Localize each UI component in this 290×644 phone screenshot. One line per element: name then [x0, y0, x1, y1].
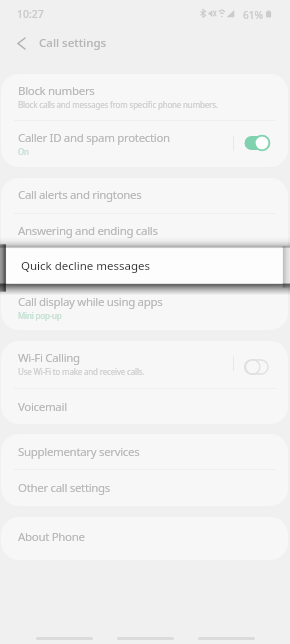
staticText: Block numbers [18, 83, 95, 99]
staticText: Quick decline messages [21, 258, 151, 274]
button[interactable]: About Phone [1, 517, 288, 560]
button[interactable]: Wi-Fi Calling [1, 341, 288, 388]
staticText: Call alerts and ringtones [18, 187, 142, 203]
button[interactable]: Voicemail [1, 389, 288, 424]
staticText: Supplementary services [18, 444, 140, 460]
button[interactable]: Other call settings [1, 470, 288, 505]
staticText: 61% [243, 8, 263, 22]
button[interactable]: Call display while using apps [1, 286, 288, 330]
staticText: About Phone [18, 529, 85, 545]
button[interactable]: Quick decline messages [6, 248, 282, 283]
button[interactable]: Block numbers [1, 74, 288, 120]
button[interactable]: Back [198, 631, 255, 644]
staticText: Call display while using apps [18, 294, 163, 310]
button[interactable]: Home [117, 631, 174, 644]
staticText: Call settings [39, 35, 107, 51]
button[interactable]: Navigate up [9, 31, 33, 55]
button[interactable]: Call alerts and ringtones [1, 178, 288, 213]
button[interactable]: Switch on [234, 120, 284, 166]
staticText: Mini pop-up [18, 310, 62, 321]
staticText: On [18, 146, 29, 157]
staticText: Block calls and messages from specific p… [18, 99, 218, 110]
button[interactable]: Caller ID and spam protection [1, 121, 288, 167]
staticText: Caller ID and spam protection [18, 130, 170, 146]
button[interactable]: Switch off [234, 343, 284, 390]
button[interactable]: Answering and ending calls [1, 214, 288, 249]
staticText: Other call settings [18, 480, 111, 496]
staticText: Quick decline messages [18, 260, 140, 276]
button[interactable]: Recent apps [36, 631, 93, 644]
staticText: Use Wi-Fi to make and receive calls. [18, 366, 145, 377]
button[interactable]: Quick decline messages [1, 250, 288, 285]
button[interactable]: Supplementary services [1, 434, 288, 469]
staticText: 10:27 [17, 7, 44, 21]
staticText: Answering and ending calls [18, 223, 158, 239]
staticText: Wi-Fi Calling [18, 350, 80, 366]
staticText: Voicemail [18, 399, 67, 415]
